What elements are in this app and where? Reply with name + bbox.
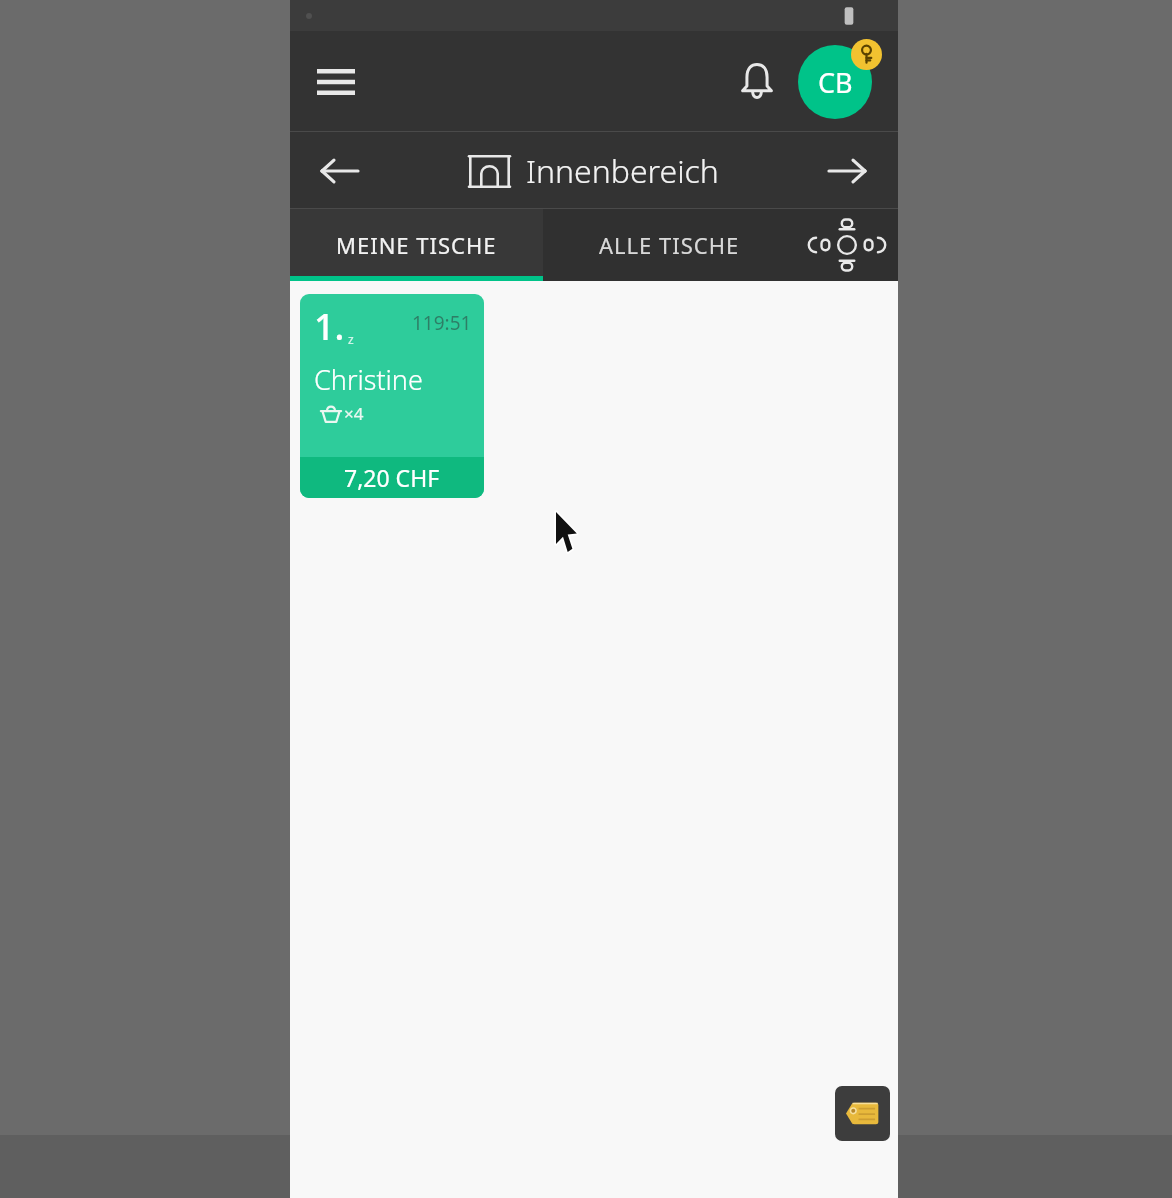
staticText: 7,20 CHF bbox=[344, 462, 440, 493]
button[interactable]: 1. bbox=[300, 294, 484, 498]
button[interactable]: ALLE TISCHE bbox=[543, 209, 795, 281]
button[interactable]: Table layout bbox=[795, 209, 898, 281]
button[interactable]: Previous area bbox=[307, 138, 373, 204]
staticText: ALLE TISCHE bbox=[599, 230, 740, 260]
staticText: z bbox=[348, 331, 354, 347]
button[interactable]: Menu bbox=[300, 46, 372, 118]
button[interactable]: MEINE TISCHE bbox=[290, 209, 543, 281]
staticText: 119:51 bbox=[412, 310, 472, 336]
staticText: Innenbereich bbox=[526, 149, 719, 193]
button[interactable]: Labels bbox=[835, 1086, 890, 1141]
staticText: MEINE TISCHE bbox=[336, 230, 497, 260]
staticText: 1. bbox=[314, 302, 345, 351]
button[interactable]: Next area bbox=[814, 138, 880, 204]
staticText: ×4 bbox=[344, 402, 364, 425]
button[interactable]: Notifications bbox=[721, 46, 793, 118]
button[interactable]: Account CB bbox=[798, 39, 884, 125]
staticText: Christine bbox=[314, 361, 423, 398]
staticText: CB bbox=[818, 64, 853, 101]
